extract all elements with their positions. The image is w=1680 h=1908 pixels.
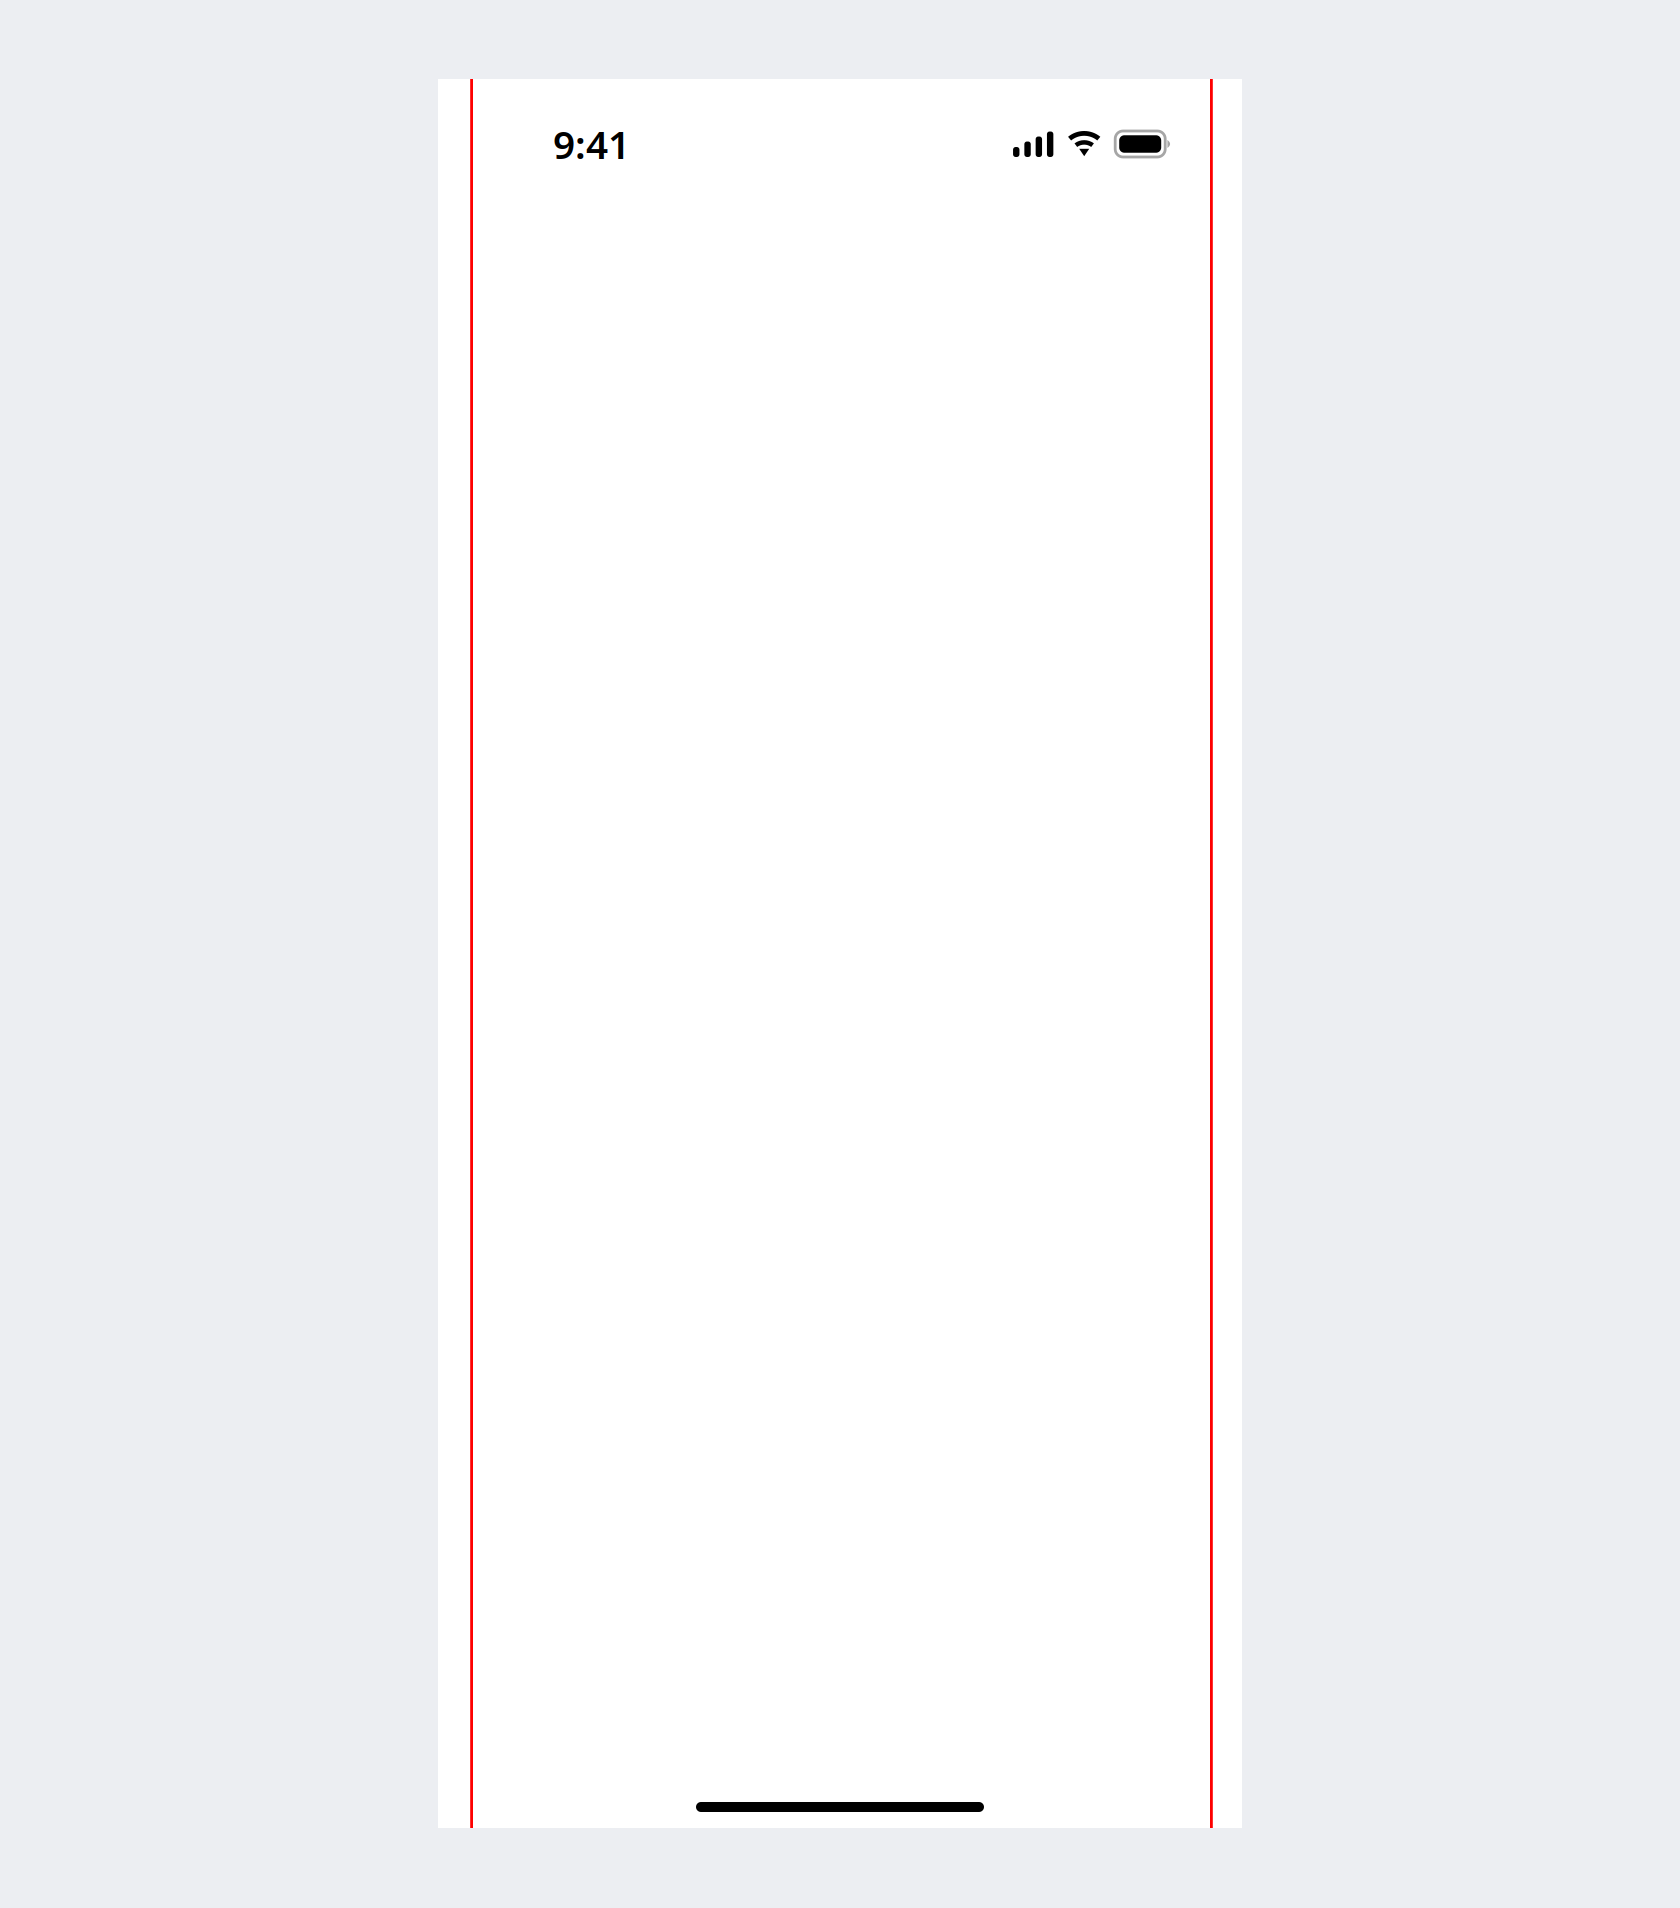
staticText: 9:41 — [553, 118, 630, 170]
